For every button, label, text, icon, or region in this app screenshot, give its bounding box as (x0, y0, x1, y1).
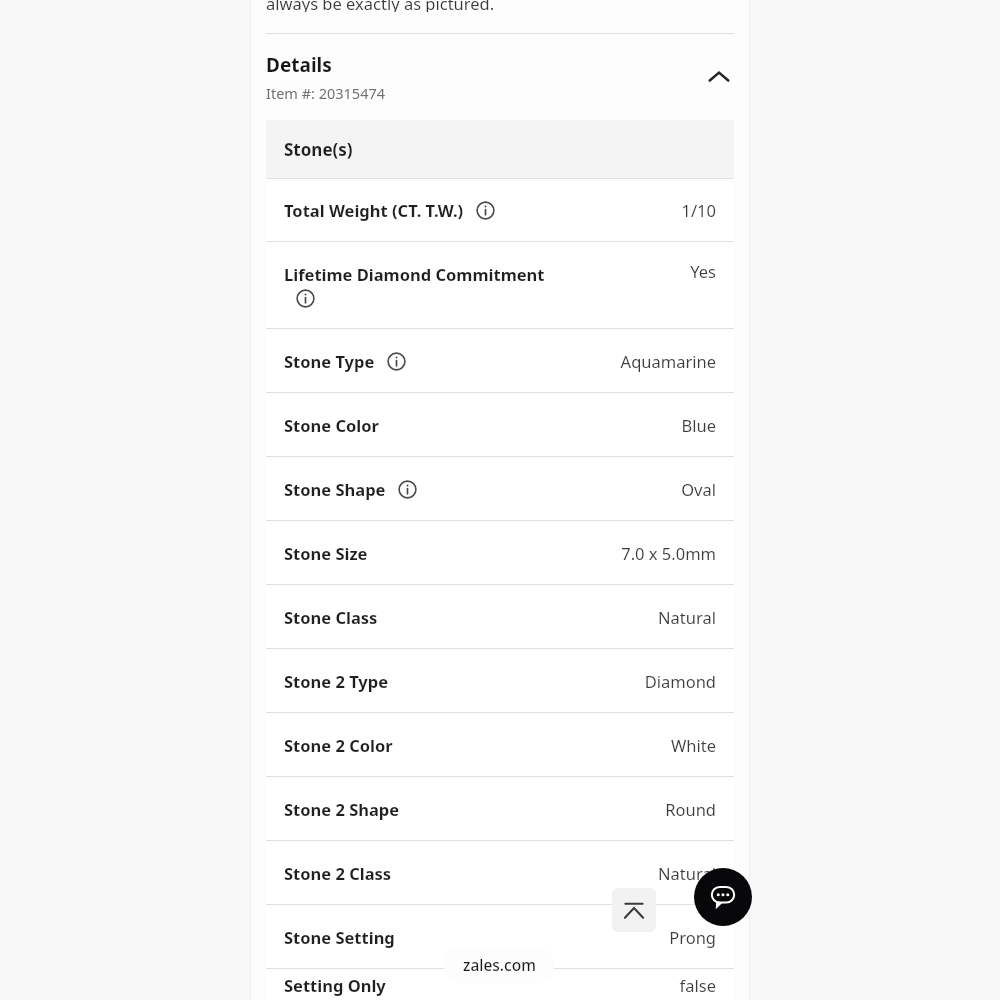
button[interactable]: Stone 2 Type (266, 648, 734, 712)
staticText: Stone Class (284, 606, 378, 628)
staticText: 7.0 x 5.0mm (621, 542, 716, 564)
staticText: Stone(s) (284, 138, 353, 161)
staticText: Item #: 20315474 (266, 83, 386, 103)
staticText: Total Weight (CT. T.W.) (284, 199, 464, 221)
button[interactable]: Details (250, 34, 750, 120)
button[interactable]: Collapse details (702, 60, 736, 94)
button[interactable]: Stone Setting (266, 904, 734, 968)
button[interactable]: Stone Color (266, 392, 734, 456)
staticText: zales.com (463, 954, 536, 975)
button[interactable]: Total Weight (CT. T.W.) (266, 178, 734, 241)
button[interactable]: Stone Class (266, 584, 734, 648)
staticText: Setting Only (284, 974, 386, 996)
button[interactable]: Chat (694, 868, 752, 926)
staticText: Prong (669, 926, 716, 948)
staticText: Aquamarine (620, 350, 716, 372)
button[interactable]: Stone(s) (266, 120, 734, 178)
staticText: Stone Setting (284, 926, 395, 948)
staticText: Stone Shape (284, 478, 386, 500)
staticText: Yes (690, 260, 716, 282)
staticText: Details (266, 52, 332, 78)
button[interactable]: Stone Shape (266, 456, 734, 520)
staticText: always be exactly as pictured. (266, 0, 495, 12)
staticText: Round (665, 798, 716, 820)
button[interactable]: Stone 2 Class (266, 840, 734, 904)
button[interactable]: Setting Only (266, 968, 734, 1000)
staticText: Oval (681, 478, 716, 500)
staticText: Stone Color (284, 414, 379, 436)
staticText: false (679, 974, 716, 996)
button[interactable]: Scroll to top (612, 888, 656, 932)
staticText: Diamond (644, 670, 716, 692)
staticText: Lifetime Diamond Commitment (284, 263, 545, 285)
staticText: Blue (681, 414, 716, 436)
staticText: Stone 2 Class (284, 862, 392, 884)
button[interactable]: Stone Size (266, 520, 734, 584)
staticText: Stone 2 Type (284, 670, 389, 692)
staticText: Stone Type (284, 350, 375, 372)
staticText: Stone 2 Color (284, 734, 393, 756)
button[interactable]: Stone Type (266, 328, 734, 392)
button[interactable]: Stone 2 Shape (266, 776, 734, 840)
button[interactable]: Stone 2 Color (266, 712, 734, 776)
button[interactable]: Lifetime Diamond Commitment (266, 241, 734, 328)
staticText: White (670, 734, 716, 756)
staticText: Stone Size (284, 542, 368, 564)
staticText: Stone 2 Shape (284, 798, 400, 820)
staticText: 1/10 (681, 199, 716, 221)
staticText: Natural (658, 606, 716, 628)
staticText: Natural (658, 862, 716, 884)
